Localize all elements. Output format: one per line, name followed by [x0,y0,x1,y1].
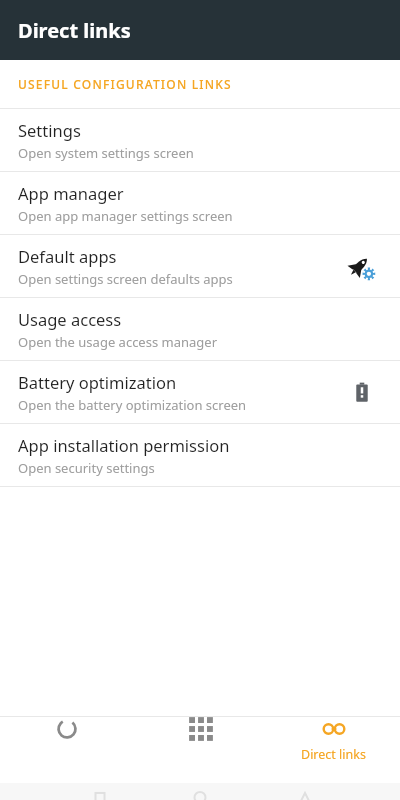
button[interactable]: Status [0,717,134,741]
staticText: USEFUL CONFIGURATION LINKS [18,76,232,92]
staticText: Open the battery optimization screen [18,396,247,414]
button[interactable]: Direct links [267,717,400,763]
staticText: Default apps [18,245,117,267]
button[interactable]: App manager [0,172,400,234]
staticText: Direct links [18,17,131,44]
staticText: Settings [18,119,81,141]
staticText: Open system settings screen [18,144,194,162]
staticText: Open app manager settings screen [18,207,233,225]
button[interactable]: Usage access [0,298,400,360]
staticText: Battery optimization [18,371,177,393]
button[interactable]: Settings [0,109,400,171]
button[interactable]: App installation permission [0,424,400,486]
button[interactable]: Apps [134,717,267,741]
staticText: Direct links [301,746,366,763]
staticText: App manager [18,182,124,204]
button[interactable]: Battery optimization [0,361,400,423]
staticText: Open settings screen defaults apps [18,270,233,288]
staticText: Usage access [18,308,122,330]
staticText: App installation permission [18,434,230,456]
staticText: Open security settings [18,459,155,477]
staticText: Open the usage access manager [18,333,218,351]
button[interactable]: Default apps [0,235,400,297]
